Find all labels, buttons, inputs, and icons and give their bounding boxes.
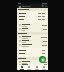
button[interactable]: Search xyxy=(42,5,44,7)
button[interactable]: Navigation menu xyxy=(17,4,48,8)
button[interactable] xyxy=(17,32,48,35)
button[interactable]: Stats xyxy=(33,65,40,70)
button[interactable] xyxy=(18,11,47,22)
button[interactable]: Profile xyxy=(40,65,47,70)
button[interactable] xyxy=(17,43,48,47)
button[interactable]: Navigation menu xyxy=(18,5,21,8)
button[interactable]: Lists xyxy=(25,65,32,70)
button[interactable] xyxy=(17,27,48,31)
button[interactable]: Home xyxy=(18,65,25,70)
button[interactable] xyxy=(17,39,48,43)
button[interactable] xyxy=(18,48,47,56)
button[interactable] xyxy=(17,64,48,65)
button[interactable] xyxy=(17,35,48,39)
button[interactable] xyxy=(17,60,48,64)
button[interactable] xyxy=(17,57,48,60)
button[interactable] xyxy=(17,23,48,27)
button[interactable]: Add xyxy=(39,56,46,63)
button[interactable] xyxy=(17,8,48,11)
